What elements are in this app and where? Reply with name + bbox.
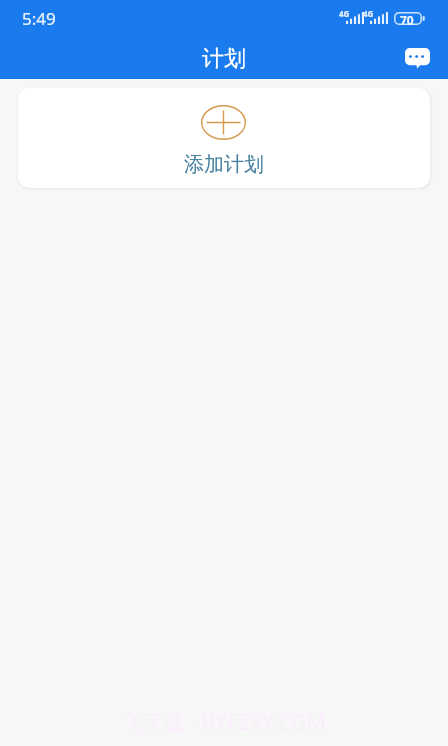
staticText: 5:49 [22,7,56,30]
staticText: 计划 [202,45,246,73]
button[interactable]: 添加计划 [18,88,430,188]
staticText: 添加计划 [18,152,430,177]
button[interactable]: Messages [398,40,436,76]
staticText: 70 [400,12,414,25]
staticText: 4G [339,8,350,19]
staticText: 4G [363,8,374,19]
